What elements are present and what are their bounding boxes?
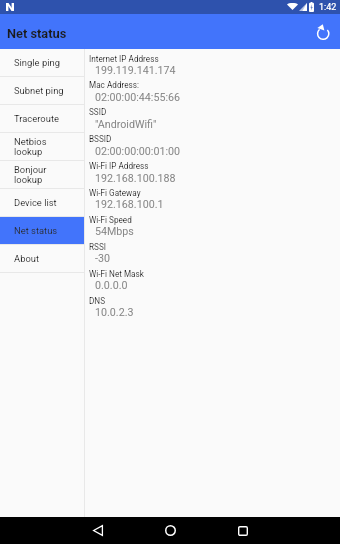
staticText: Bonjour lookup — [14, 164, 47, 186]
button[interactable]: Single ping — [0, 49, 84, 76]
staticText: SSID — [89, 107, 107, 117]
staticText: About — [14, 253, 40, 264]
button[interactable]: Back — [73, 517, 123, 544]
staticText: BSSID — [89, 134, 112, 144]
staticText: 199.119.141.174 — [95, 64, 176, 77]
staticText: Netbios lookup — [14, 136, 47, 158]
staticText: 1:42 — [319, 2, 337, 13]
staticText: Wi-Fi Gateway — [89, 188, 141, 198]
staticText: 02:00:00:44:55:66 — [95, 91, 181, 104]
staticText: Internet IP Address — [89, 54, 159, 64]
staticText: DNS — [89, 296, 106, 306]
staticText: 192.168.100.1 — [95, 198, 164, 211]
button[interactable]: About — [0, 245, 84, 272]
button[interactable]: Recent apps — [218, 517, 268, 544]
button[interactable]: Bonjour lookup — [0, 161, 84, 188]
button[interactable]: Traceroute — [0, 105, 84, 132]
staticText: Net status — [14, 225, 58, 236]
button[interactable]: Device list — [0, 189, 84, 216]
staticText: Wi-Fi IP Address — [89, 161, 149, 171]
staticText: 10.0.2.3 — [95, 306, 134, 319]
button[interactable]: Refresh — [310, 19, 336, 45]
staticText: Wi-Fi Speed — [89, 215, 132, 225]
staticText: Device list — [14, 197, 57, 208]
staticText: "AndroidWifi" — [95, 118, 157, 131]
staticText: Traceroute — [14, 113, 59, 124]
staticText: 192.168.100.188 — [95, 172, 176, 185]
staticText: Single ping — [14, 57, 60, 68]
staticText: Wi-Fi Net Mask — [89, 269, 144, 279]
staticText: 0.0.0.0 — [95, 279, 128, 292]
button[interactable]: Netbios lookup — [0, 133, 84, 160]
staticText: 02:00:00:00:01:00 — [95, 145, 181, 158]
staticText: RSSI — [89, 242, 106, 252]
staticText: Subnet ping — [14, 85, 64, 96]
staticText: -30 — [95, 252, 110, 265]
staticText: 54Mbps — [95, 225, 134, 238]
button[interactable]: Subnet ping — [0, 77, 84, 104]
staticText: Net status — [7, 26, 67, 41]
button[interactable]: Net status — [0, 217, 84, 244]
staticText: Mac Address: — [89, 80, 139, 90]
button[interactable]: Home — [145, 517, 195, 544]
